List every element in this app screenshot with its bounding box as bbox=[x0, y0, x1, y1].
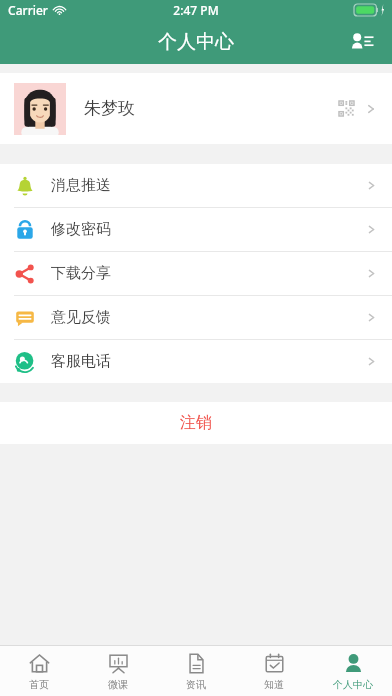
staticText: 消息推送 bbox=[51, 176, 111, 195]
staticText: 意见反馈 bbox=[51, 308, 111, 327]
button[interactable]: 知道 bbox=[235, 646, 313, 696]
button[interactable]: 消息推送 bbox=[0, 164, 392, 207]
staticText: 朱梦玫 bbox=[84, 98, 135, 119]
button[interactable]: 意见反馈 bbox=[0, 296, 392, 339]
staticText: 微课 bbox=[108, 678, 128, 691]
button[interactable]: 下载分享 bbox=[0, 252, 392, 295]
staticText: 首页 bbox=[29, 678, 49, 691]
button[interactable]: 注销 bbox=[0, 402, 392, 444]
staticText: 个人中心 bbox=[158, 30, 234, 54]
button[interactable]: 微课 bbox=[79, 646, 157, 696]
staticText: 客服电话 bbox=[51, 352, 111, 371]
staticText: 资讯 bbox=[186, 678, 206, 691]
button[interactable]: 资讯 bbox=[157, 646, 235, 696]
button[interactable]: 朱梦玫 bbox=[0, 73, 392, 144]
staticText: 注销 bbox=[180, 413, 212, 433]
staticText: 下载分享 bbox=[51, 264, 111, 283]
button[interactable]: 个人中心 bbox=[314, 646, 392, 696]
staticText: 个人中心 bbox=[333, 678, 373, 691]
staticText: 知道 bbox=[264, 678, 284, 691]
button[interactable]: Contacts bbox=[342, 22, 382, 62]
button[interactable]: 修改密码 bbox=[0, 208, 392, 251]
staticText: Carrier bbox=[8, 2, 48, 18]
staticText: 2:47 PM bbox=[173, 2, 219, 18]
staticText: 修改密码 bbox=[51, 220, 111, 239]
button[interactable]: 首页 bbox=[0, 646, 78, 696]
button[interactable]: 客服电话 bbox=[0, 340, 392, 383]
